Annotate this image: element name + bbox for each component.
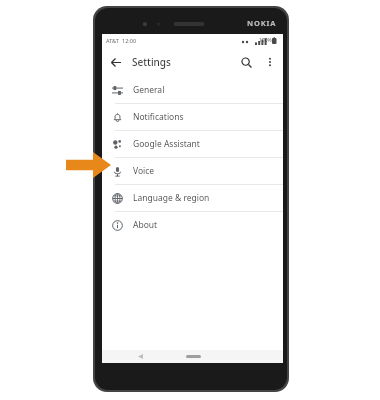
staticText: About [133, 219, 158, 231]
button[interactable]: Google Assistant [102, 131, 283, 157]
staticText: Google Assistant [133, 138, 200, 150]
button[interactable]: Voice [102, 158, 283, 184]
staticText: Notifications [133, 111, 184, 123]
button[interactable]: Back [102, 47, 283, 77]
staticText: General [133, 84, 165, 96]
staticText: 12:00 [122, 37, 137, 44]
staticText: 100% [259, 37, 272, 44]
button[interactable]: Notifications [102, 104, 283, 130]
button[interactable]: More options [259, 51, 281, 73]
button[interactable]: Language & region [102, 185, 283, 211]
staticText: AT&T [106, 37, 119, 44]
button[interactable]: Back [102, 49, 128, 75]
staticText: NOKIA [247, 18, 277, 28]
button[interactable]: Back [131, 350, 149, 363]
button[interactable]: About [102, 212, 283, 238]
staticText: Voice [133, 165, 155, 177]
button[interactable]: Home [180, 350, 206, 363]
staticText: Language & region [133, 192, 210, 204]
staticText: Settings [132, 55, 171, 69]
button[interactable]: Search [233, 49, 259, 75]
button[interactable]: General [102, 77, 283, 103]
